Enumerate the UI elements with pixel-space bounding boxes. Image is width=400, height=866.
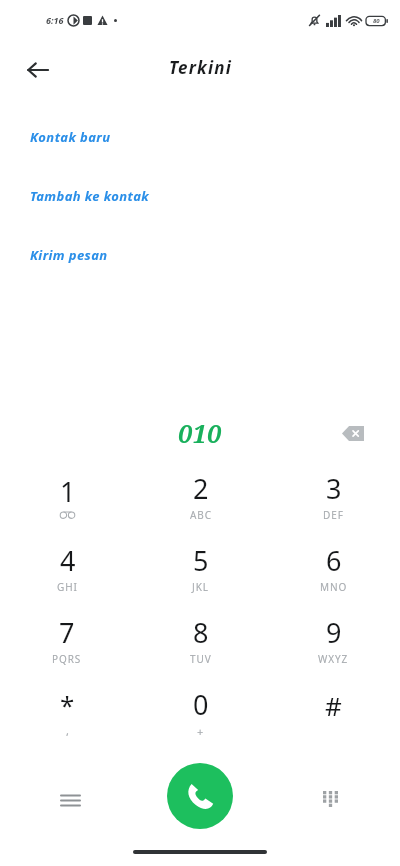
staticText: 1	[60, 473, 76, 510]
button[interactable]: Call log	[48, 778, 92, 822]
staticText: 9	[326, 614, 342, 651]
staticText: 6:16	[46, 14, 64, 26]
button[interactable]: *	[0, 678, 134, 750]
button[interactable]: Tambah ke kontak	[0, 181, 400, 211]
button[interactable]: 7	[0, 606, 134, 678]
button[interactable]: 9	[267, 606, 400, 678]
staticText: MNO	[320, 580, 348, 594]
button[interactable]: Back	[18, 50, 58, 90]
staticText: PQRS	[52, 652, 82, 666]
staticText: 3	[326, 470, 342, 507]
staticText: ,	[66, 723, 70, 738]
staticText: 80	[373, 17, 380, 25]
button[interactable]: Kirim pesan	[0, 240, 400, 270]
staticText: 2	[193, 470, 209, 507]
staticText: 6	[326, 542, 342, 579]
button[interactable]: 1	[0, 462, 134, 534]
staticText: #	[325, 688, 342, 723]
staticText: 8	[193, 614, 209, 651]
staticText: ABC	[190, 508, 212, 522]
button[interactable]: 3	[267, 462, 400, 534]
staticText: JKL	[192, 580, 209, 594]
staticText: 0	[193, 686, 209, 723]
staticText: Kirim pesan	[30, 246, 108, 264]
staticText: TUV	[190, 652, 212, 666]
button[interactable]: Call	[167, 763, 233, 829]
staticText: WXYZ	[318, 652, 349, 666]
staticText: +	[197, 724, 205, 739]
staticText: 5	[193, 542, 209, 579]
button[interactable]: 5	[134, 534, 267, 606]
button[interactable]: #	[267, 678, 400, 750]
staticText: GHI	[57, 580, 78, 594]
button[interactable]: 4	[0, 534, 134, 606]
button[interactable]: 2	[134, 462, 267, 534]
button[interactable]: 8	[134, 606, 267, 678]
staticText: 7	[59, 614, 75, 651]
button[interactable]: Kontak baru	[0, 122, 400, 152]
staticText: *	[60, 687, 75, 722]
staticText: DEF	[323, 508, 344, 522]
button[interactable]: 0	[134, 678, 267, 750]
staticText: 010	[178, 416, 222, 450]
staticText: Kontak baru	[30, 128, 111, 146]
staticText: Tambah ke kontak	[30, 187, 150, 205]
button[interactable]: Dialpad	[308, 778, 352, 822]
button[interactable]: Backspace	[332, 412, 374, 454]
staticText: Terkini	[169, 56, 232, 79]
staticText: 4	[60, 542, 76, 579]
button[interactable]: 6	[267, 534, 400, 606]
